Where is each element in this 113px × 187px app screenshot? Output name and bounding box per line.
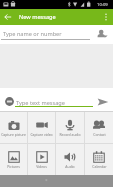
- staticText: Pictures: [7, 164, 20, 169]
- button[interactable]: Add contact: [94, 26, 110, 42]
- button[interactable]: More options: [99, 10, 113, 24]
- staticText: Record audio: [59, 132, 81, 137]
- staticText: Videos: [36, 164, 47, 169]
- button[interactable]: Contact: [85, 112, 113, 143]
- button[interactable]: Audio: [56, 144, 84, 175]
- button[interactable]: Capture video: [28, 112, 55, 143]
- staticText: New message: [19, 13, 56, 21]
- button[interactable]: Calendar: [85, 144, 113, 175]
- button[interactable]: Pictures: [0, 144, 27, 175]
- button[interactable]: Videos: [28, 144, 55, 175]
- staticText: Capture picture: [1, 132, 26, 137]
- button[interactable]: Send: [95, 93, 112, 110]
- button[interactable]: Capture picture: [0, 112, 27, 143]
- button[interactable]: Record audio: [56, 112, 84, 143]
- staticText: 10:09: [97, 2, 108, 8]
- staticText: Contact: [93, 132, 106, 137]
- staticText: Calendar: [92, 164, 107, 169]
- button[interactable]: Back: [0, 9, 16, 25]
- staticText: Capture video: [30, 132, 53, 137]
- staticText: Type name or number: [3, 30, 62, 38]
- staticText: Audio: [65, 164, 75, 169]
- staticText: Type text message: [16, 99, 65, 107]
- button[interactable]: Emoji: [4, 96, 15, 107]
